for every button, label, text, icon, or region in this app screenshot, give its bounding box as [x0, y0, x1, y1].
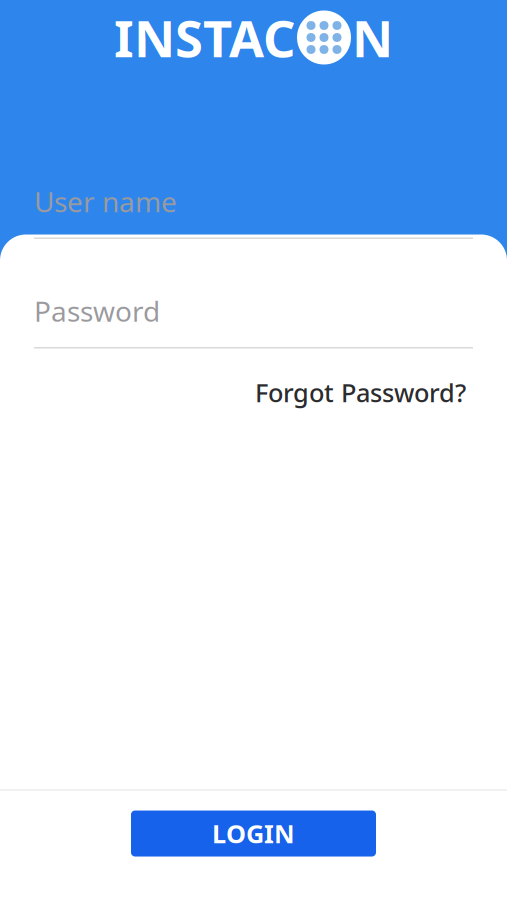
staticText: Forgot Password? [255, 375, 466, 409]
staticText: Password [34, 292, 160, 330]
staticText: INSTAC [114, 4, 296, 71]
button[interactable]: Forgot Password? [253, 367, 468, 417]
staticText: LOGIN [212, 817, 295, 850]
button[interactable]: LOGIN [131, 810, 376, 856]
staticText: N [352, 4, 393, 71]
staticText: User name [34, 183, 177, 220]
